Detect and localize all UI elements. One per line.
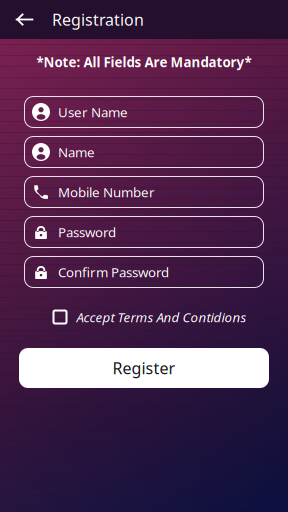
button[interactable]: Name: [24, 136, 264, 168]
staticText: Password: [58, 223, 116, 241]
staticText: Mobile Number: [58, 183, 155, 201]
staticText: *Note: All Fields Are Mandatory*: [36, 53, 251, 71]
button[interactable]: Accept Terms And Contidions: [0, 306, 288, 328]
button[interactable]: User Name: [24, 96, 264, 128]
staticText: User Name: [58, 103, 128, 121]
staticText: Registration: [52, 9, 144, 30]
staticText: Confirm Password: [58, 263, 169, 281]
button[interactable]: Password: [24, 216, 264, 248]
button[interactable]: Mobile Number: [24, 176, 264, 208]
button[interactable]: Register: [19, 348, 269, 388]
staticText: Accept Terms And Contidions: [76, 308, 246, 326]
staticText: Register: [112, 357, 175, 379]
staticText: Name: [58, 143, 95, 161]
button[interactable]: Back: [0, 0, 42, 39]
button[interactable]: Confirm Password: [24, 256, 264, 288]
